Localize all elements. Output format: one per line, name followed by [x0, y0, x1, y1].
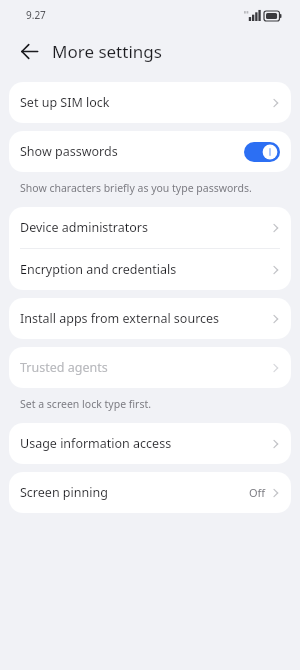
staticText: Set a screen lock type first.	[20, 397, 284, 411]
button[interactable]: Back	[12, 34, 46, 68]
button[interactable]: Show passwords	[9, 131, 291, 172]
button[interactable]: Device administrators	[9, 207, 291, 248]
staticText: 9.27	[26, 8, 46, 22]
staticText: Device administrators	[20, 219, 271, 236]
staticText: Off	[249, 485, 266, 500]
button[interactable]: Show passwords toggle	[244, 142, 280, 162]
staticText: Show passwords	[20, 143, 244, 160]
staticText: Encryption and credentials	[20, 261, 271, 278]
button[interactable]: Screen pinning	[9, 472, 291, 513]
staticText: Screen pinning	[20, 484, 249, 501]
button[interactable]: Set up SIM lock	[9, 82, 291, 123]
button[interactable]: Encryption and credentials	[9, 249, 291, 290]
staticText: Set up SIM lock	[20, 94, 271, 111]
staticText: Install apps from external sources	[20, 310, 271, 327]
staticText: Usage information access	[20, 435, 271, 452]
button[interactable]: Install apps from external sources	[9, 298, 291, 339]
staticText: Trusted agents	[20, 359, 271, 376]
button[interactable]: Usage information access	[9, 423, 291, 464]
button[interactable]: Trusted agents	[9, 347, 291, 388]
staticText: More settings	[52, 40, 162, 63]
staticText: Show characters briefly as you type pass…	[20, 181, 284, 195]
